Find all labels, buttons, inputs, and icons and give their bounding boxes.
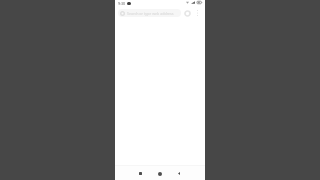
button[interactable]: Recents <box>138 171 143 176</box>
staticText: 9:30 <box>118 1 126 6</box>
button[interactable]: More options <box>194 10 200 16</box>
button[interactable]: Back <box>176 171 181 176</box>
staticText: Search or type web address <box>127 11 174 16</box>
button[interactable]: Home <box>157 171 162 176</box>
button[interactable]: Account <box>184 10 191 17</box>
button[interactable]: Search or type web address <box>118 9 181 17</box>
